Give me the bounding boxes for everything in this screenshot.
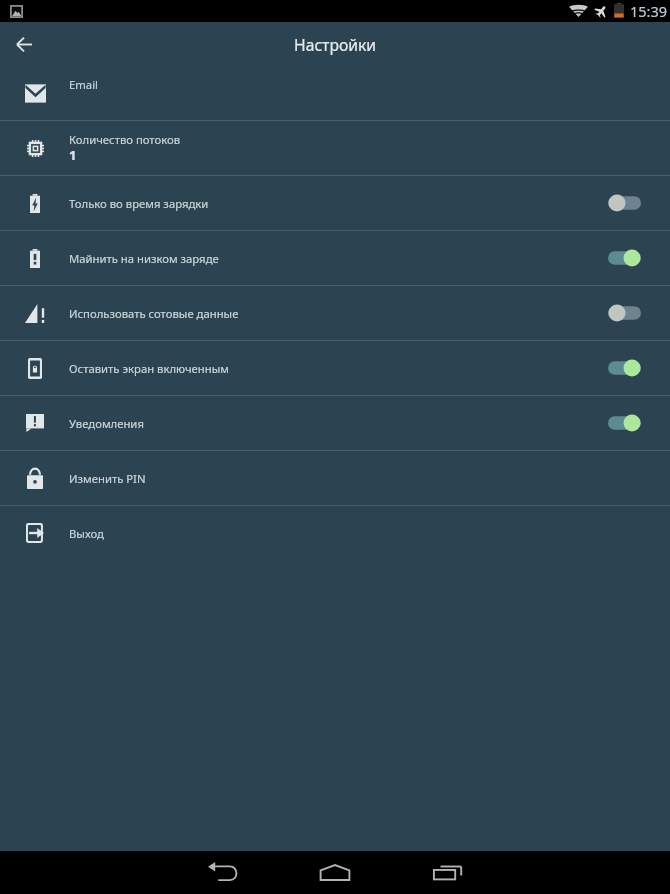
button[interactable]: Email <box>0 66 670 120</box>
staticText: 1 <box>69 146 77 164</box>
button[interactable]: Использовать сотовые данные <box>0 286 670 340</box>
staticText: 15:39 <box>630 1 668 21</box>
button[interactable]: Оставить экран включенным <box>0 341 670 395</box>
button[interactable]: Уведомления <box>0 396 670 450</box>
staticText: Количество потоков <box>69 132 181 147</box>
staticText: Только во время зарядки <box>69 196 209 211</box>
staticText: Уведомления <box>69 416 144 431</box>
button[interactable]: Home <box>295 851 375 894</box>
button[interactable]: Майнить на низком заряде <box>0 231 670 285</box>
button[interactable]: Back <box>183 851 263 894</box>
button[interactable]: Recents <box>408 851 488 894</box>
button[interactable]: Toggle on <box>608 241 670 275</box>
button[interactable]: Изменить PIN <box>0 451 670 505</box>
button[interactable]: Toggle on <box>608 351 670 385</box>
button[interactable]: Выход <box>0 506 670 560</box>
button[interactable]: Toggle off <box>608 186 670 220</box>
staticText: Оставить экран включенным <box>69 361 229 376</box>
button[interactable]: Количество потоков <box>0 121 670 175</box>
button[interactable]: Toggle on <box>608 406 670 440</box>
button[interactable]: Back <box>0 22 46 66</box>
staticText: Майнить на низком заряде <box>69 251 219 266</box>
staticText: Выход <box>69 526 104 541</box>
staticText: Настройки <box>294 34 377 55</box>
button[interactable]: Toggle off <box>608 296 670 330</box>
staticText: Email <box>69 77 99 92</box>
staticText: Использовать сотовые данные <box>69 306 239 321</box>
staticText: Изменить PIN <box>69 471 146 486</box>
button[interactable]: Только во время зарядки <box>0 176 670 230</box>
